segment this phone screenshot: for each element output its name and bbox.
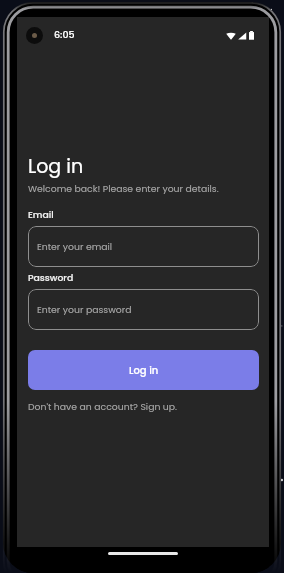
button[interactable]: Enter your email <box>28 226 259 267</box>
staticText: Welcome back! Please enter your details. <box>28 182 219 195</box>
staticText: Email <box>28 208 54 221</box>
staticText: 6:05 <box>54 28 75 41</box>
button[interactable]: Enter your password <box>28 289 259 330</box>
staticText: Log in <box>129 363 159 377</box>
staticText: Enter your email <box>37 240 113 253</box>
staticText: Enter your password <box>37 303 132 316</box>
staticText: Log in <box>28 153 84 180</box>
button[interactable]: Log in <box>28 350 259 390</box>
button[interactable]: Don't have an account? Sign up. <box>28 400 178 413</box>
staticText: Password <box>28 271 74 284</box>
